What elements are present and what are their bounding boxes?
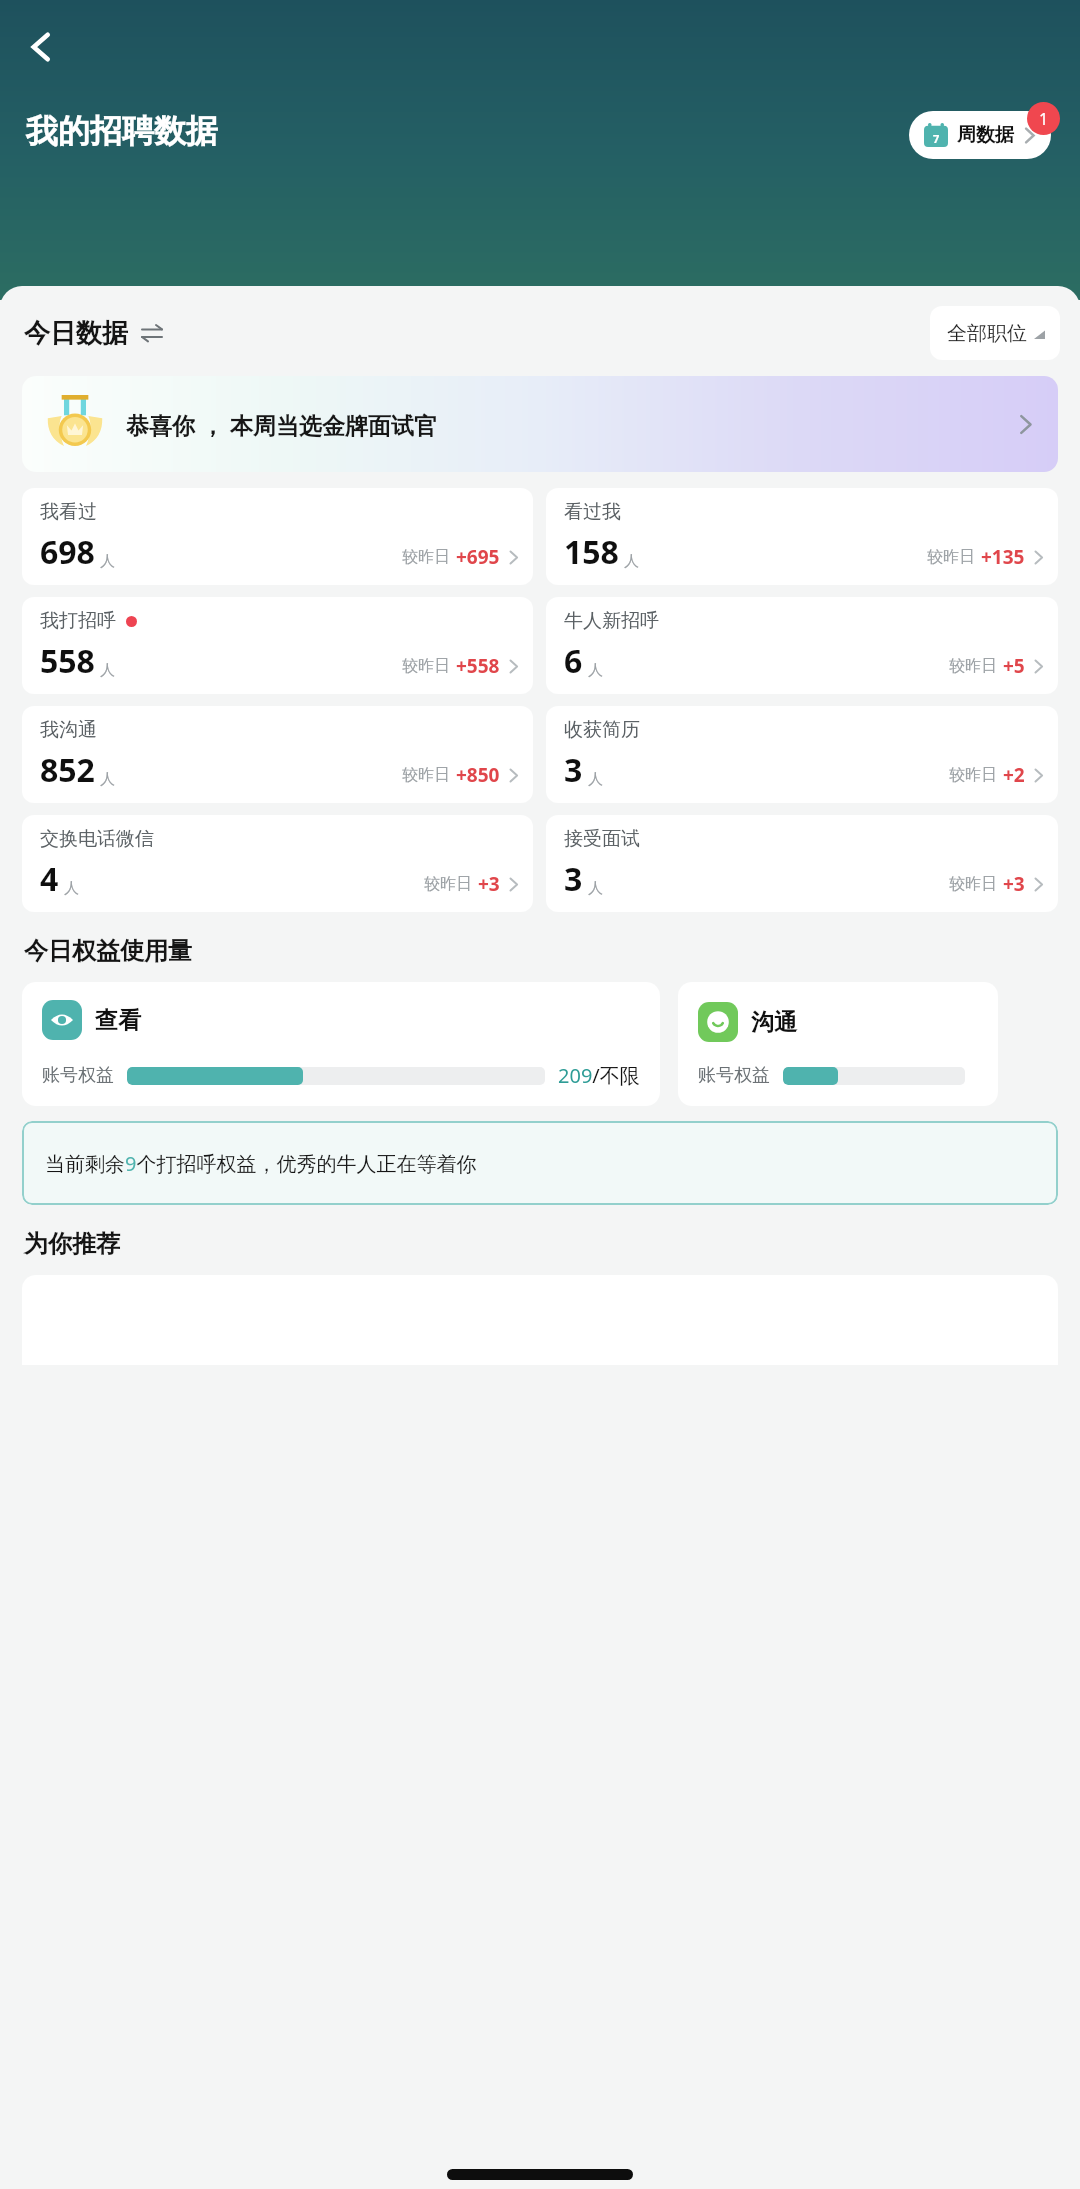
- staticText: 人: [588, 770, 603, 789]
- staticText: 较昨日: [402, 656, 450, 676]
- staticText: 3: [564, 857, 583, 901]
- staticText: 较昨日: [402, 765, 450, 785]
- staticText: 收获简历: [564, 718, 640, 742]
- staticText: 较昨日: [949, 874, 997, 894]
- staticText: 人: [64, 879, 79, 898]
- staticText: 较昨日: [927, 547, 975, 567]
- staticText: +135: [981, 544, 1025, 570]
- staticText: 我的招聘数据: [26, 111, 218, 151]
- staticText: 558: [40, 639, 95, 683]
- button[interactable]: 牛人新招呼: [546, 597, 1058, 694]
- staticText: 接受面试: [564, 827, 640, 851]
- staticText: 查看: [95, 1006, 141, 1035]
- button[interactable]: 我打招呼: [22, 597, 533, 694]
- staticText: 当前剩余9个打招呼权益，优秀的牛人正在等着你: [45, 1150, 477, 1177]
- button[interactable]: 全部职位: [930, 306, 1060, 360]
- staticText: 今日数据: [24, 317, 128, 350]
- staticText: +850: [456, 762, 500, 788]
- staticText: 全部职位: [947, 321, 1027, 346]
- staticText: 3: [564, 748, 583, 792]
- button[interactable]: 当前剩余9个打招呼权益，优秀的牛人正在等着你: [22, 1121, 1058, 1205]
- staticText: 看过我: [564, 500, 621, 524]
- staticText: 为你推荐: [24, 1229, 120, 1259]
- button[interactable]: Switch data view: [138, 319, 166, 347]
- staticText: 账号权益: [42, 1064, 114, 1087]
- staticText: 1: [1039, 108, 1049, 130]
- button[interactable]: 接受面试: [546, 815, 1058, 912]
- staticText: 我沟通: [40, 718, 97, 742]
- button[interactable]: Back: [12, 18, 70, 76]
- staticText: 我打招呼: [40, 609, 116, 633]
- staticText: 沟通: [751, 1008, 797, 1037]
- staticText: +3: [1003, 871, 1025, 897]
- staticText: 较昨日: [424, 874, 472, 894]
- staticText: 人: [588, 879, 603, 898]
- staticText: 周数据: [957, 123, 1014, 147]
- staticText: +5: [1003, 653, 1025, 679]
- staticText: 6: [564, 639, 583, 683]
- staticText: 7: [933, 131, 940, 146]
- staticText: 账号权益: [698, 1064, 770, 1087]
- button[interactable]: 我沟通: [22, 706, 533, 803]
- button[interactable]: 看过我: [546, 488, 1058, 585]
- staticText: 4: [40, 857, 59, 901]
- button[interactable]: 查看: [22, 982, 660, 1106]
- staticText: +558: [456, 653, 500, 679]
- staticText: +2: [1003, 762, 1025, 788]
- staticText: 我看过: [40, 500, 97, 524]
- staticText: 人: [100, 770, 115, 789]
- staticText: 较昨日: [949, 656, 997, 676]
- staticText: 较昨日: [402, 547, 450, 567]
- staticText: 852: [40, 748, 95, 792]
- button[interactable]: 交换电话微信: [22, 815, 533, 912]
- staticText: 人: [588, 661, 603, 680]
- staticText: 今日权益使用量: [24, 936, 192, 966]
- staticText: 恭喜你 ， 本周当选金牌面试官: [126, 409, 437, 440]
- button[interactable]: 7: [909, 111, 1051, 159]
- staticText: 较昨日: [949, 765, 997, 785]
- staticText: +695: [456, 544, 500, 570]
- staticText: 209/不限: [558, 1062, 640, 1089]
- staticText: 158: [564, 530, 619, 574]
- button[interactable]: 恭喜你 ， 本周当选金牌面试官: [22, 376, 1058, 472]
- staticText: 人: [100, 552, 115, 571]
- button[interactable]: 收获简历: [546, 706, 1058, 803]
- button[interactable]: 沟通: [678, 982, 998, 1106]
- staticText: +3: [478, 871, 500, 897]
- staticText: 交换电话微信: [40, 827, 154, 851]
- button[interactable]: 我看过: [22, 488, 533, 585]
- staticText: 人: [624, 552, 639, 571]
- staticText: 牛人新招呼: [564, 609, 659, 633]
- staticText: 698: [40, 530, 95, 574]
- staticText: 人: [100, 661, 115, 680]
